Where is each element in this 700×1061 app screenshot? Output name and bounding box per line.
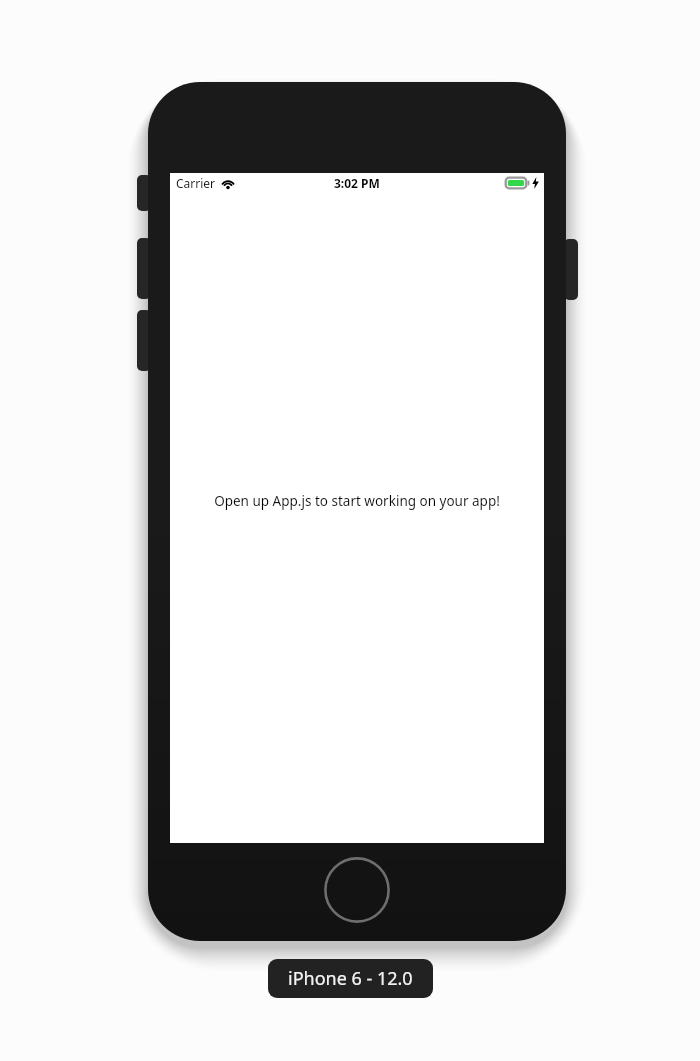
staticText: iPhone 6 - 12.0 xyxy=(288,966,413,991)
button[interactable]: iPhone 6 - 12.0 xyxy=(268,959,433,998)
staticText: 3:02 PM xyxy=(334,175,380,191)
button[interactable]: Home xyxy=(324,857,390,923)
staticText: Carrier xyxy=(176,175,216,191)
staticText: Open up App.js to start working on your … xyxy=(214,492,500,510)
